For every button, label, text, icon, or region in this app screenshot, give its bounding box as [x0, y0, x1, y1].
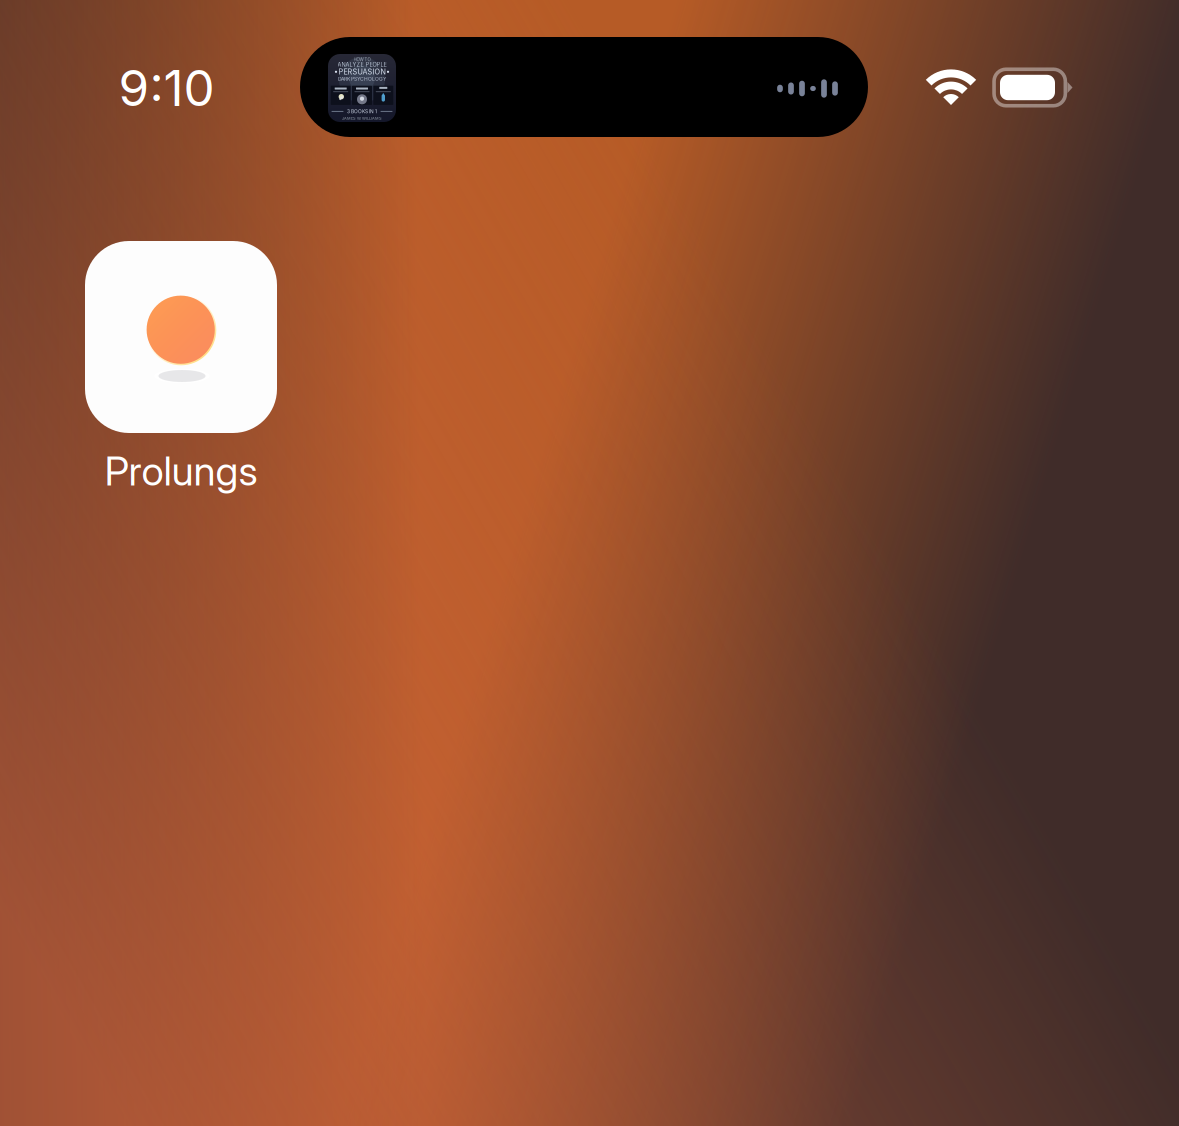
staticText: JAMES W. WILLIAMS — [342, 116, 382, 121]
staticText: 3 BOOKS IN 1 — [347, 108, 377, 114]
staticText: HOW TO — [353, 57, 370, 62]
staticText: DARK PSYCHOLOGY — [338, 76, 386, 82]
staticText: ANALYZE PEOPLE — [337, 61, 386, 68]
button[interactable]: Prolungs — [85, 241, 277, 497]
staticText: Prolungs — [104, 447, 257, 495]
button[interactable]: Now Playing: How to Analyze People, Pers… — [300, 37, 868, 137]
staticText: 9:10 — [118, 58, 214, 118]
staticText: PERSUASION — [338, 67, 385, 76]
